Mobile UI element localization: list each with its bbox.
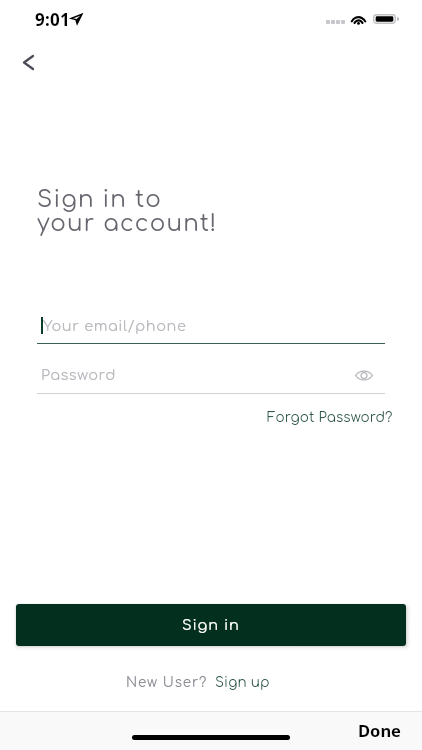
button[interactable]: Sign in [16,604,406,646]
staticText: New User? [126,675,208,690]
staticText: Your email/phone [43,318,187,334]
staticText: Forgot Password? [267,410,393,425]
button[interactable]: Sign up [215,675,270,690]
button[interactable]: Back [8,42,48,82]
staticText: Sign in [182,617,240,633]
staticText: Sign in to your account! [37,187,218,237]
staticText: Done [358,719,401,741]
button[interactable]: Done [358,719,401,741]
staticText: Password [41,367,359,383]
staticText: 9:01 [35,8,71,31]
button[interactable]: Forgot Password? [267,405,393,429]
button[interactable]: Show password [349,360,379,390]
